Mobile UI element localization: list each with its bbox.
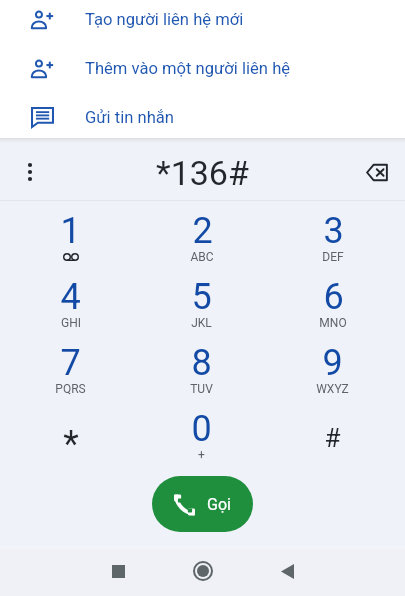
- button[interactable]: Thêm vào một người liên hệ: [0, 44, 405, 93]
- staticText: 7: [60, 342, 81, 384]
- staticText: *: [63, 423, 79, 465]
- staticText: *136#: [156, 153, 249, 193]
- staticText: 0: [191, 408, 212, 450]
- button[interactable]: Back: [245, 549, 330, 593]
- staticText: PQRS: [55, 382, 86, 396]
- staticText: 3: [323, 210, 344, 252]
- button[interactable]: Tạo người liên hệ mới: [0, 0, 405, 44]
- staticText: WXYZ: [316, 382, 349, 396]
- staticText: MNO: [319, 316, 347, 330]
- button[interactable]: 7: [5, 342, 136, 408]
- staticText: GHI: [61, 316, 81, 330]
- button[interactable]: 8: [136, 342, 267, 408]
- button[interactable]: 5: [136, 276, 267, 342]
- staticText: JKL: [191, 316, 212, 330]
- button[interactable]: *: [5, 408, 136, 474]
- button[interactable]: 4: [5, 276, 136, 342]
- staticText: 2: [192, 210, 213, 252]
- button[interactable]: Home: [160, 549, 245, 593]
- button[interactable]: Gọi: [152, 476, 253, 532]
- staticText: +: [198, 448, 205, 462]
- staticText: 4: [60, 276, 81, 318]
- staticText: 5: [191, 276, 212, 318]
- button[interactable]: Recent apps: [76, 549, 160, 593]
- staticText: 6: [323, 276, 344, 318]
- staticText: Gửi tin nhắn: [85, 108, 174, 127]
- button[interactable]: Gửi tin nhắn: [0, 93, 405, 138]
- staticText: Thêm vào một người liên hệ: [85, 59, 291, 78]
- staticText: Tạo người liên hệ mới: [85, 10, 244, 29]
- button[interactable]: 1: [5, 210, 136, 276]
- button[interactable]: 0: [136, 408, 267, 474]
- staticText: 8: [191, 342, 212, 384]
- button[interactable]: 6: [267, 276, 398, 342]
- button[interactable]: 9: [267, 342, 398, 408]
- staticText: Gọi: [207, 495, 231, 514]
- button[interactable]: 2: [136, 210, 267, 276]
- button[interactable]: More options: [10, 152, 50, 192]
- staticText: TUV: [190, 382, 213, 396]
- button[interactable]: #: [267, 408, 398, 474]
- button[interactable]: 3: [267, 210, 398, 276]
- button[interactable]: Backspace: [357, 152, 397, 192]
- staticText: 1: [60, 210, 81, 252]
- staticText: DEF: [322, 250, 344, 264]
- staticText: 9: [322, 342, 343, 384]
- staticText: ABC: [190, 250, 214, 264]
- staticText: #: [324, 423, 341, 453]
